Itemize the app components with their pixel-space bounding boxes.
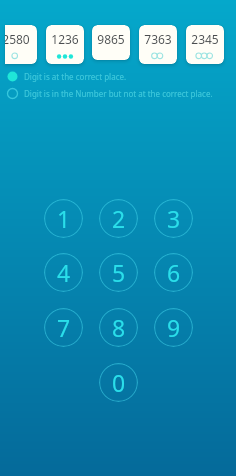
button[interactable]: 6	[154, 253, 193, 292]
button[interactable]: 1236	[46, 25, 84, 64]
button[interactable]: 9865	[92, 25, 130, 60]
staticText: 7363	[139, 31, 177, 47]
staticText: 4	[57, 257, 71, 288]
staticText: 9	[167, 312, 181, 343]
button[interactable]: 2345	[186, 25, 224, 64]
staticText: 9865	[92, 31, 130, 47]
button[interactable]: 7363	[139, 25, 177, 64]
button[interactable]: 3	[154, 199, 193, 238]
staticText: 2345	[186, 31, 224, 47]
button[interactable]: 8	[99, 308, 138, 347]
staticText: Digit is at the correct place.	[24, 71, 127, 82]
button[interactable]: 9	[154, 308, 193, 347]
staticText: 8	[112, 312, 126, 343]
button[interactable]: Digit is at the correct place.	[7, 71, 127, 82]
button[interactable]: 7	[44, 308, 83, 347]
staticText: 0	[112, 367, 126, 398]
button[interactable]: Digit is in the Number but not at the co…	[7, 88, 213, 99]
staticText: 7	[57, 312, 71, 343]
button[interactable]: 0	[99, 363, 138, 402]
button[interactable]: 2580	[5, 25, 37, 64]
button[interactable]: 2	[99, 199, 138, 238]
button[interactable]: 4	[44, 253, 83, 292]
button[interactable]: 5	[99, 253, 138, 292]
staticText: 2	[112, 203, 126, 234]
staticText: 2580	[5, 31, 32, 47]
staticText: 6	[167, 257, 181, 288]
staticText: Digit is in the Number but not at the co…	[24, 88, 213, 99]
button[interactable]: 1	[44, 199, 83, 238]
staticText: 1236	[46, 31, 84, 47]
staticText: 3	[167, 203, 181, 234]
staticText: 1	[57, 203, 71, 234]
staticText: 5	[112, 257, 126, 288]
